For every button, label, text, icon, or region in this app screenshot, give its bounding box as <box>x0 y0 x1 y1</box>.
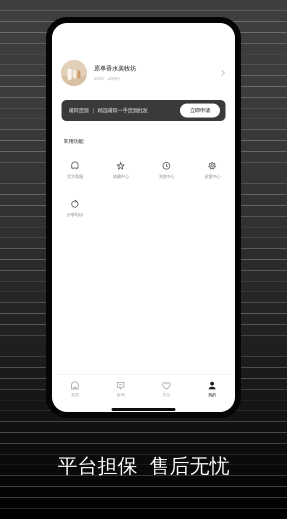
staticText: 我的 <box>208 392 216 397</box>
button[interactable]: 分享App <box>52 200 98 219</box>
button[interactable]: 我的 <box>189 378 235 400</box>
staticText: 平台担保 售后无忧 <box>57 454 229 478</box>
staticText: 原单香水美牧坊 <box>94 64 136 72</box>
staticText: 常用功能 <box>63 138 83 145</box>
button[interactable]: 原单香水美牧坊 <box>52 60 235 86</box>
button[interactable]: 收藏中心 <box>98 162 144 181</box>
button[interactable]: 咨询 <box>98 378 144 400</box>
staticText: 浏览中心 <box>158 174 174 179</box>
button[interactable]: 首页 <box>52 378 98 400</box>
staticText: 收藏中心 <box>113 174 129 179</box>
staticText: 莆田货源 ｜ 精选莆田一手货源批发 <box>68 107 147 114</box>
staticText: 分享App <box>66 212 83 218</box>
button[interactable]: 关注 <box>143 378 189 400</box>
staticText: 咨询 <box>117 392 125 397</box>
staticText: MZID：478981 <box>94 76 120 81</box>
button[interactable]: 浏览中心 <box>143 162 189 181</box>
staticText: 关注 <box>162 392 170 397</box>
staticText: 首页 <box>71 392 79 397</box>
staticText: 官方客服 <box>67 174 83 179</box>
button[interactable]: 官方客服 <box>52 162 98 181</box>
button[interactable]: 设置中心 <box>189 162 235 181</box>
staticText: 立即申请 <box>190 107 210 114</box>
staticText: 设置中心 <box>204 174 220 179</box>
button[interactable]: 立即申请 <box>180 103 220 117</box>
